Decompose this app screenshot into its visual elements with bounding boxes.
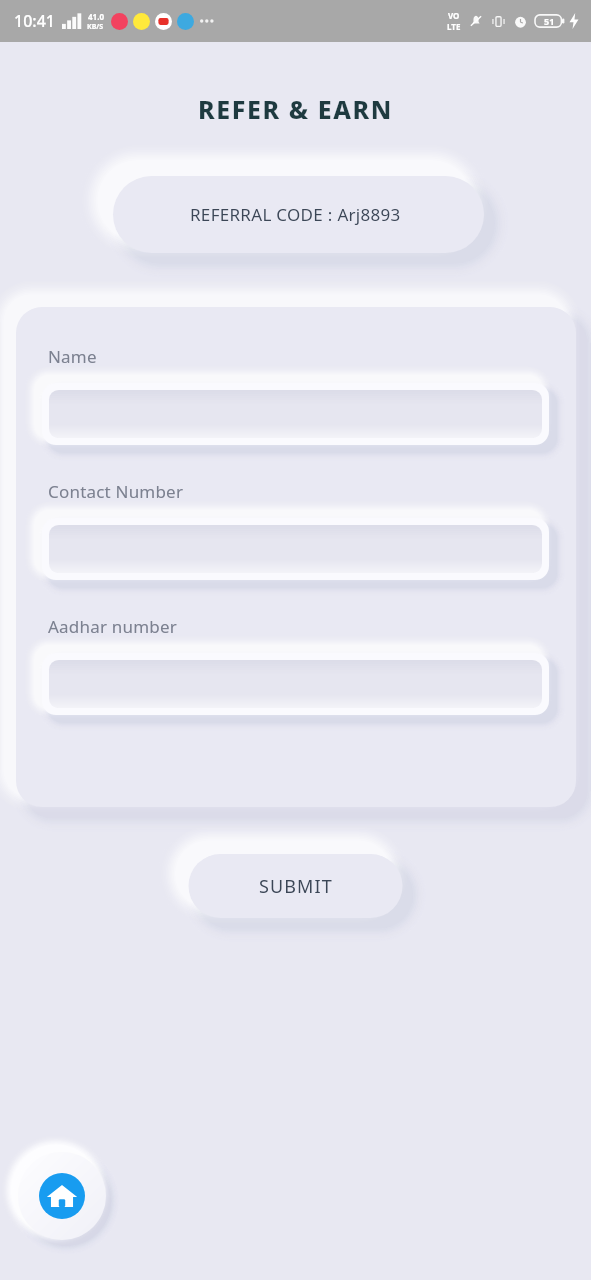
staticText: VO — [448, 10, 460, 21]
staticText: REFERRAL CODE : Arj8893 — [190, 203, 401, 226]
staticText: 10:41 — [14, 10, 55, 32]
button[interactable] — [48, 379, 543, 445]
staticText: 51 — [544, 15, 555, 27]
button[interactable]: Home — [18, 1152, 106, 1240]
staticText: KB/S — [87, 22, 104, 32]
staticText: REFER & EARN — [0, 92, 591, 126]
staticText: 41.0 — [88, 11, 104, 22]
staticText: Name — [48, 345, 97, 368]
staticText: LTE — [447, 21, 461, 32]
staticText: SUBMIT — [259, 874, 333, 899]
button[interactable]: SUBMIT — [189, 854, 403, 918]
staticText: Contact Number — [48, 480, 184, 503]
staticText: Aadhar number — [48, 615, 177, 638]
button[interactable] — [48, 649, 543, 715]
button[interactable] — [48, 514, 543, 580]
button[interactable]: REFERRAL CODE : Arj8893 — [0, 168, 591, 261]
